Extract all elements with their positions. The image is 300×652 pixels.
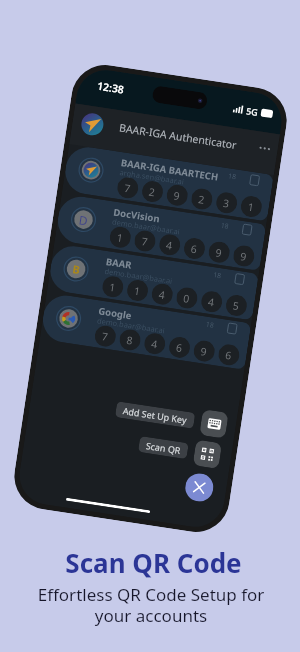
staticText: DocVision: [112, 206, 161, 225]
button[interactable]: B: [47, 243, 259, 320]
staticText: BAAR: [105, 255, 133, 272]
staticText: argha.sen@baar.ai: [119, 167, 185, 187]
staticText: 7: [140, 234, 149, 249]
staticText: 9: [215, 245, 224, 260]
staticText: demo.baar@baar.ai: [104, 266, 174, 286]
staticText: Google: [98, 304, 133, 322]
staticText: 1: [116, 230, 125, 245]
button[interactable]: Add Set Up Key: [115, 401, 195, 429]
button[interactable]: Copy code: [240, 222, 254, 236]
staticText: 3: [222, 196, 231, 211]
staticText: 6: [224, 348, 233, 363]
staticText: 18: [212, 270, 223, 281]
staticText: 0: [182, 291, 191, 306]
staticText: 18: [220, 221, 230, 232]
button[interactable]: Google: [40, 292, 251, 370]
staticText: 7: [123, 181, 132, 196]
staticText: demo.baar@baar.ai: [111, 216, 181, 237]
staticText: 18: [227, 171, 238, 182]
staticText: 1: [133, 283, 142, 298]
staticText: 6: [190, 242, 199, 256]
staticText: 1: [108, 280, 117, 295]
staticText: BAAR-IGA Authenticator: [118, 120, 238, 152]
staticText: 4: [150, 337, 159, 352]
staticText: Add Set Up Key: [122, 404, 188, 426]
staticText: 5: [232, 298, 241, 313]
staticText: BAAR-IGA BAARTECH: [120, 156, 220, 184]
staticText: 1: [247, 200, 256, 214]
button[interactable]: BAAR-IGA BAARTECH: [62, 144, 274, 221]
button[interactable]: Add set up key: [199, 409, 229, 439]
button[interactable]: Copy code: [225, 321, 239, 335]
staticText: 9: [239, 249, 248, 264]
staticText: 4: [158, 287, 167, 302]
staticText: 5G: [245, 104, 259, 118]
staticText: Scan QR Code: [65, 545, 242, 580]
staticText: 4: [207, 295, 216, 310]
staticText: 6: [175, 340, 184, 355]
staticText: 18: [205, 320, 215, 331]
button[interactable]: D: [55, 193, 266, 271]
button[interactable]: More options: [254, 138, 275, 159]
staticText: B: [71, 261, 82, 277]
staticText: 7: [101, 329, 110, 344]
staticText: Effortless QR Code Setup for your accoun…: [21, 583, 281, 627]
staticText: demo.baar@baar.ai: [96, 315, 166, 335]
staticText: 2: [148, 185, 157, 199]
button[interactable]: Close menu: [183, 471, 215, 503]
staticText: 12:38: [96, 79, 125, 97]
staticText: 9: [173, 188, 182, 203]
staticText: 8: [125, 333, 134, 348]
button[interactable]: Copy code: [247, 172, 262, 187]
staticText: 2: [197, 192, 206, 207]
staticText: 4: [165, 238, 174, 253]
button[interactable]: Scan QR: [138, 436, 189, 459]
staticText: D: [78, 211, 89, 229]
staticText: 9: [200, 344, 209, 359]
button[interactable]: Copy code: [232, 271, 247, 286]
staticText: Scan QR: [145, 439, 181, 456]
button[interactable]: Scan QR: [193, 439, 222, 469]
